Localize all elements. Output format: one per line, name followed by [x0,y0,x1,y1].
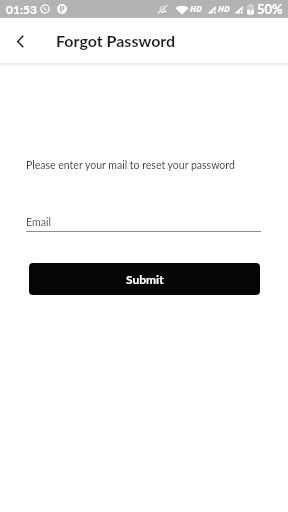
button[interactable]: Submit [29,263,260,295]
button[interactable]: Back [4,25,36,57]
staticText: 50% [257,1,283,17]
staticText: Email [26,216,51,229]
staticText: Please enter your mail to reset your pas… [26,159,235,172]
staticText: Submit [126,272,164,286]
staticText: HD [218,3,230,15]
button[interactable]: Email [26,216,261,232]
staticText: 01:53 [6,2,37,16]
staticText: Forgot Password [56,31,176,50]
staticText: HD [190,3,202,15]
